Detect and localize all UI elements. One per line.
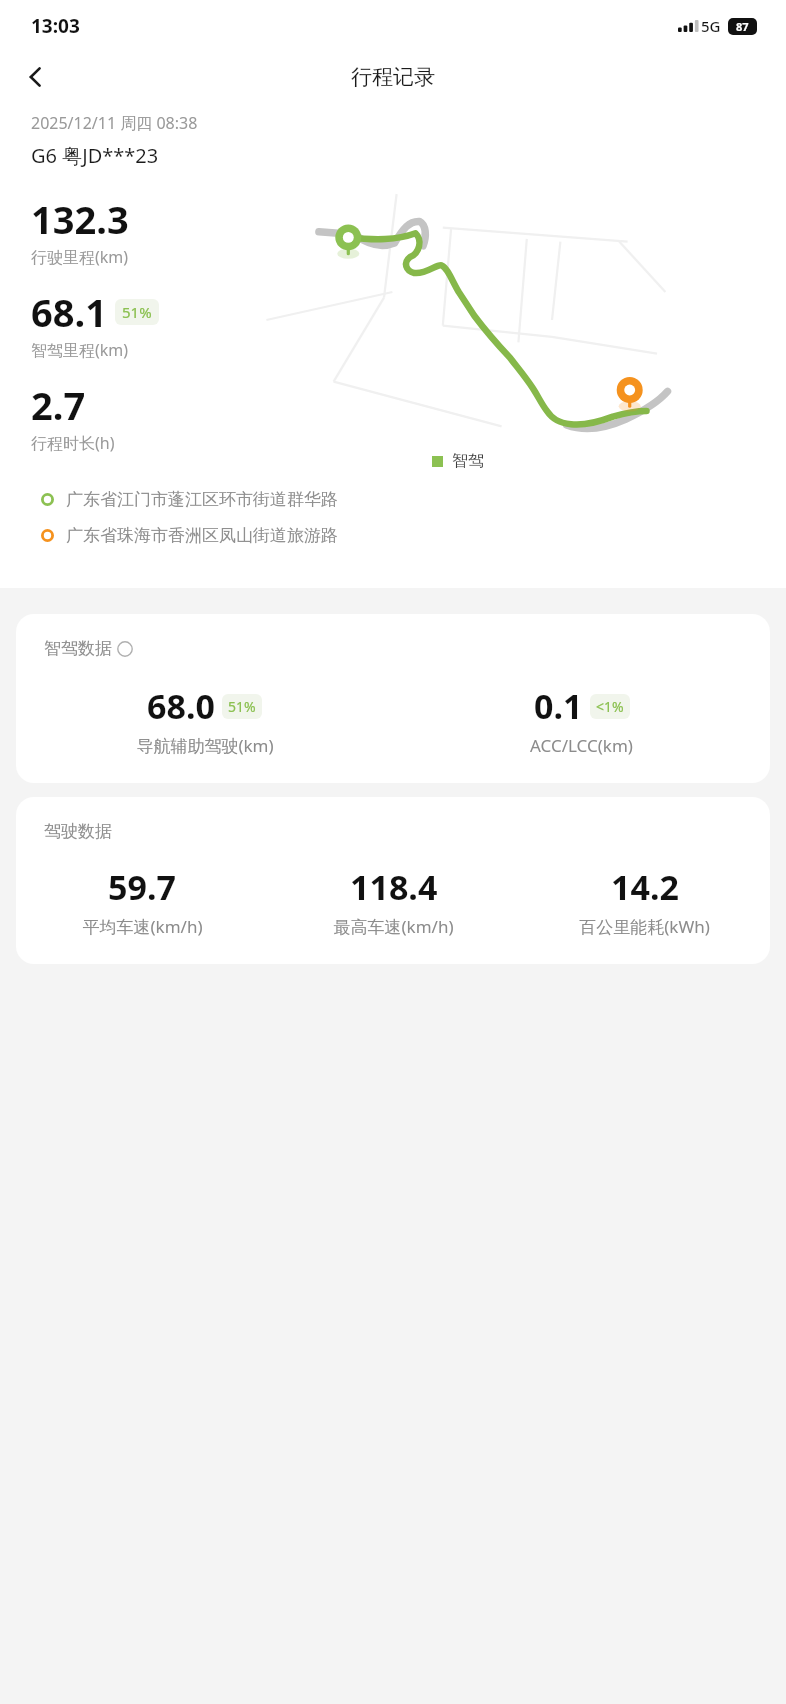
staticText: 68.1 [31, 286, 107, 338]
staticText: 驾驶数据 [44, 821, 112, 842]
staticText: 智驾 [452, 451, 484, 471]
button[interactable]: 智驾数据 [16, 614, 770, 783]
button[interactable]: 驾驶数据 [16, 797, 770, 964]
staticText: 广东省珠海市香洲区凤山街道旅游路 [66, 525, 338, 546]
staticText: 行程记录 [351, 64, 435, 90]
staticText: 68.0 [147, 683, 215, 729]
button[interactable]: Back [12, 53, 60, 101]
staticText: 平均车速(km/h) [82, 915, 203, 938]
staticText: 百公里能耗(kWh) [579, 915, 710, 938]
staticText: 14.2 [611, 864, 679, 910]
staticText: 2025/12/11 周四 08:38 [31, 112, 198, 134]
staticText: 广东省江门市蓬江区环市街道群华路 [66, 489, 338, 510]
staticText: 51% [122, 302, 152, 322]
staticText: 5G [701, 16, 721, 36]
staticText: G6 粤JD***23 [31, 142, 159, 169]
staticText: 59.7 [108, 864, 176, 910]
staticText: 132.3 [31, 193, 129, 245]
staticText: 智驾数据 [44, 638, 112, 659]
staticText: 87 [736, 19, 749, 34]
staticText: 13:03 [31, 13, 80, 39]
staticText: ACC/LCC(km) [530, 734, 633, 757]
staticText: <1% [596, 697, 624, 716]
staticText: 导航辅助驾驶(km) [136, 734, 274, 757]
staticText: 行程时长(h) [31, 432, 115, 454]
staticText: 行驶里程(km) [31, 246, 129, 268]
staticText: 2.7 [31, 379, 86, 431]
staticText: 智驾里程(km) [31, 339, 129, 361]
staticText: 最高车速(km/h) [333, 915, 454, 938]
staticText: 118.4 [350, 864, 438, 910]
staticText: 0.1 [534, 683, 583, 729]
staticText: 51% [228, 697, 256, 716]
